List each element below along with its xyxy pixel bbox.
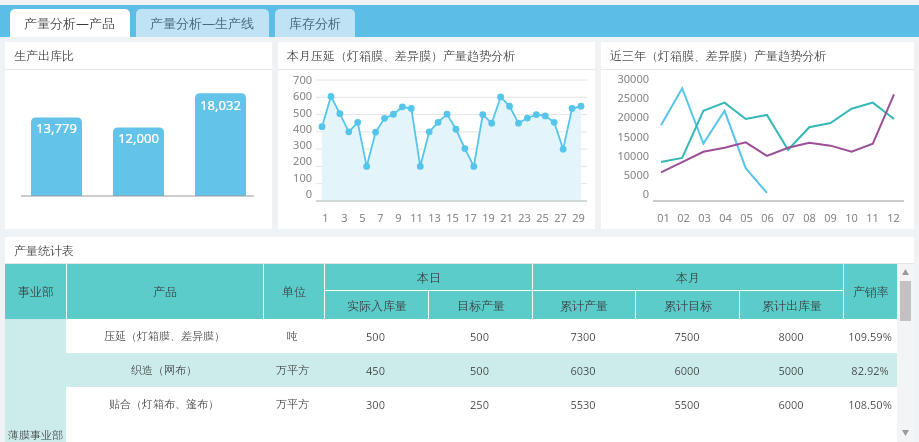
staticText: 累计目标: [664, 298, 712, 313]
staticText: 109.59%: [848, 329, 892, 344]
staticText: 500: [470, 363, 489, 378]
staticText: 10: [845, 210, 858, 225]
staticText: 产销率: [853, 284, 889, 299]
staticText: 生产出库比: [14, 48, 74, 63]
staticText: 18,032: [200, 96, 241, 114]
staticText: 6000: [778, 397, 804, 412]
staticText: 织造（网布）: [131, 363, 197, 377]
staticText: 产量分析—生产线: [150, 14, 255, 32]
staticText: 事业部: [18, 284, 54, 299]
staticText: 累计出库量: [762, 298, 822, 313]
staticText: 11: [410, 210, 423, 225]
staticText: 8000: [778, 329, 804, 344]
staticText: 6030: [570, 363, 596, 378]
staticText: 07: [782, 210, 795, 225]
staticText: 5000: [778, 363, 804, 378]
staticText: 产品: [153, 284, 177, 299]
staticText: 02: [677, 210, 690, 225]
staticText: 5500: [674, 397, 700, 412]
staticText: 万平方: [276, 397, 309, 411]
staticText: 82.92%: [851, 363, 889, 378]
staticText: 5000: [623, 167, 649, 182]
staticText: 13,779: [36, 119, 77, 137]
staticText: 200: [293, 153, 312, 168]
staticText: 450: [366, 363, 385, 378]
staticText: 400: [293, 121, 312, 136]
button[interactable]: 织造（网布）: [66, 353, 897, 387]
staticText: 实际入库量: [347, 298, 407, 313]
staticText: 0: [305, 186, 312, 201]
staticText: 6000: [674, 363, 700, 378]
staticText: 01: [657, 210, 670, 225]
staticText: 近三年（灯箱膜、差异膜）产量趋势分析: [610, 48, 826, 63]
staticText: 06: [761, 210, 774, 225]
staticText: 本月压延（灯箱膜、差异膜）产量趋势分析: [287, 48, 515, 63]
staticText: 21: [500, 210, 513, 225]
staticText: 05: [740, 210, 753, 225]
staticText: 0: [642, 186, 649, 201]
staticText: 万平方: [276, 363, 309, 377]
staticText: 23: [518, 210, 531, 225]
staticText: 7300: [570, 329, 596, 344]
staticText: 薄膜事业部: [8, 428, 63, 442]
staticText: 500: [470, 329, 489, 344]
staticText: 累计产量: [560, 298, 608, 313]
staticText: 吨: [287, 329, 298, 343]
staticText: 7500: [674, 329, 700, 344]
staticText: 17: [464, 210, 477, 225]
staticText: 250: [470, 397, 489, 412]
staticText: 目标产量: [457, 298, 505, 313]
staticText: 04: [719, 210, 732, 225]
staticText: 108.50%: [848, 397, 892, 412]
staticText: 100: [293, 170, 312, 185]
button[interactable]: 压延（灯箱膜、差异膜）: [66, 319, 897, 353]
staticText: 产量分析—产品: [24, 14, 116, 32]
button[interactable]: 产量分析—生产线: [136, 9, 269, 37]
staticText: 20000: [617, 109, 649, 124]
staticText: 29: [572, 210, 585, 225]
staticText: 19: [482, 210, 495, 225]
staticText: 03: [698, 210, 711, 225]
staticText: 11: [866, 210, 879, 225]
staticText: 1: [322, 210, 329, 225]
staticText: 本日: [417, 270, 441, 285]
staticText: 27: [554, 210, 567, 225]
staticText: 300: [366, 397, 385, 412]
staticText: 15000: [617, 129, 649, 144]
staticText: 7: [377, 210, 384, 225]
staticText: 300: [293, 137, 312, 152]
staticText: 600: [293, 88, 312, 103]
staticText: 09: [824, 210, 837, 225]
button[interactable]: 库存分析: [275, 9, 355, 37]
staticText: 13: [428, 210, 441, 225]
staticText: 25: [536, 210, 549, 225]
staticText: 10000: [617, 148, 649, 163]
button[interactable]: Scroll down: [897, 425, 914, 442]
staticText: 本月: [676, 270, 700, 285]
staticText: 25000: [617, 90, 649, 105]
staticText: 5530: [570, 397, 596, 412]
button[interactable]: 产量分析—产品: [10, 9, 130, 37]
button[interactable]: Scroll up: [897, 264, 914, 281]
staticText: 压延（灯箱膜、差异膜）: [104, 329, 225, 343]
staticText: 500: [293, 105, 312, 120]
staticText: 库存分析: [289, 15, 341, 31]
staticText: 500: [366, 329, 385, 344]
button[interactable]: 贴合（灯箱布、篷布）: [66, 387, 897, 421]
staticText: 贴合（灯箱布、篷布）: [109, 397, 219, 411]
staticText: 9: [395, 210, 402, 225]
staticText: 30000: [617, 71, 649, 86]
staticText: 12,000: [118, 129, 159, 147]
staticText: 08: [803, 210, 816, 225]
staticText: 3: [341, 210, 348, 225]
staticText: 700: [293, 72, 312, 87]
staticText: 单位: [282, 284, 306, 299]
staticText: 5: [359, 210, 366, 225]
staticText: 12: [887, 210, 900, 225]
staticText: 15: [446, 210, 459, 225]
staticText: 产量统计表: [14, 243, 74, 258]
